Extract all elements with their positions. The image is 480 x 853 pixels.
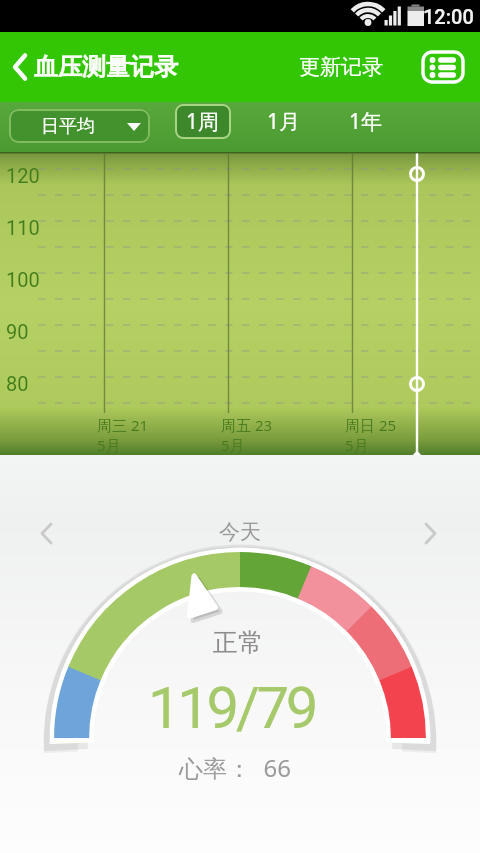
staticText: 5月 — [97, 435, 121, 455]
button[interactable]: 1月 — [256, 104, 312, 139]
button[interactable] — [410, 513, 450, 553]
staticText: 5月 — [221, 435, 245, 455]
staticText: 1年 — [349, 107, 383, 136]
staticText: 119/79 — [148, 674, 316, 742]
button[interactable] — [423, 52, 463, 82]
staticText: 1周 — [186, 107, 220, 136]
staticText: 110 — [6, 216, 40, 239]
staticText: 周三 21 — [97, 415, 149, 435]
staticText: 血压测量记录 — [34, 52, 178, 82]
staticText: 5月 — [345, 435, 369, 455]
button[interactable]: 1年 — [338, 104, 394, 139]
staticText: 1月 — [267, 107, 301, 136]
staticText: 日平均 — [41, 115, 95, 138]
staticText: 心率： 66 — [179, 751, 291, 784]
staticText: 今天 — [219, 519, 261, 545]
button[interactable]: 日平均 — [9, 109, 150, 143]
button[interactable]: 血压测量记录 — [0, 52, 178, 82]
staticText: 周五 23 — [221, 415, 273, 435]
staticText: 90 — [6, 320, 29, 343]
staticText: 周日 25 — [345, 415, 397, 435]
staticText: 80 — [6, 372, 29, 395]
button[interactable]: 1周 — [175, 104, 231, 139]
staticText: 120 — [6, 164, 40, 187]
staticText: 100 — [6, 268, 40, 291]
staticText: 12:00 — [423, 5, 474, 28]
button[interactable] — [30, 513, 70, 553]
button[interactable]: 更新记录 — [299, 54, 383, 80]
staticText: 正常 — [213, 627, 263, 658]
